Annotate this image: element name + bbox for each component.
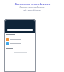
button[interactable] (6, 42, 34, 45)
button[interactable] (6, 38, 34, 41)
staticText: Approve purchases (14, 2, 51, 5)
staticText: at anytime (23, 8, 41, 11)
staticText: from anywhere (19, 5, 45, 8)
